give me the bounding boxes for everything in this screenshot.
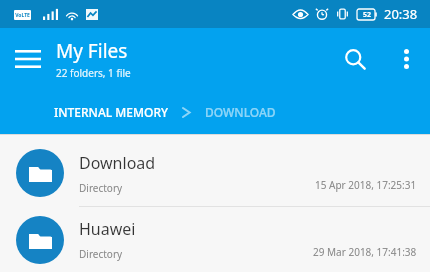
staticText: 52 (363, 10, 372, 20)
staticText: Directory (79, 181, 123, 195)
button[interactable]: INTERNAL MEMORY (54, 94, 168, 130)
staticText: 29 Mar 2018, 17:41:38 (313, 245, 417, 259)
staticText: 15 Apr 2018, 17:25:31 (315, 178, 417, 192)
button[interactable]: More options (382, 35, 430, 83)
button[interactable]: DOWNLOAD (205, 94, 276, 130)
button[interactable]: Open navigation drawer (0, 31, 56, 87)
staticText: Download (79, 152, 156, 174)
staticText: VoLTE (15, 12, 30, 19)
staticText: 20:38 (384, 5, 418, 23)
staticText: DOWNLOAD (205, 104, 276, 120)
staticText: INTERNAL MEMORY (54, 104, 168, 120)
button[interactable]: Huawei (0, 207, 430, 272)
staticText: 22 folders, 1 file (56, 66, 131, 80)
button[interactable]: Download (0, 140, 430, 206)
staticText: Huawei (79, 218, 136, 240)
staticText: My Files (56, 38, 128, 64)
button[interactable]: Search (328, 32, 382, 86)
staticText: Directory (79, 247, 123, 261)
